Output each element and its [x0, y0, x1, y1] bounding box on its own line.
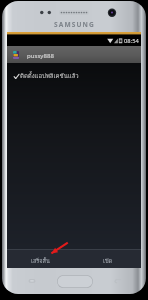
- staticText: 08:54: [124, 37, 139, 45]
- staticText: SAMSUNG: [54, 20, 95, 29]
- staticText: เปิด: [103, 257, 113, 266]
- button[interactable]: เปิด: [74, 250, 141, 268]
- staticText: pussy888: [27, 51, 54, 59]
- button[interactable]: เสร็จสิ้น: [7, 250, 74, 268]
- staticText: ติดตั้งแอปพลิเคชันแล้ว: [20, 71, 79, 81]
- button[interactable]: Home: [57, 275, 93, 288]
- button[interactable]: Recents: [28, 275, 36, 285]
- staticText: เสร็จสิ้น: [31, 257, 50, 266]
